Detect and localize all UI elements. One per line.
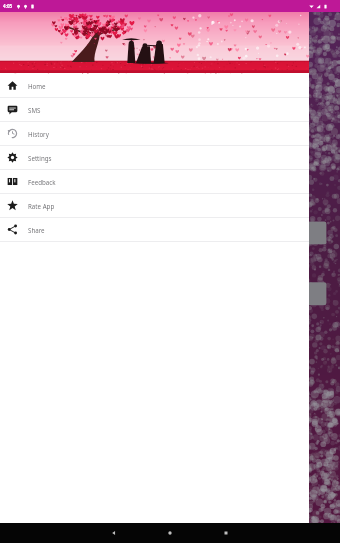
staticText: Settings (28, 154, 52, 162)
staticText: SMS (28, 106, 41, 114)
staticText: Rate App (28, 202, 55, 210)
staticText: 4:05 (3, 3, 13, 9)
button[interactable]: Rate App (0, 194, 309, 217)
staticText: Home (28, 82, 46, 90)
button[interactable]: Settings (0, 146, 309, 169)
button[interactable]: Feedback (0, 170, 309, 193)
button[interactable]: Recent apps (206, 523, 246, 543)
button[interactable]: Share (0, 218, 309, 241)
button[interactable]: Home (150, 523, 190, 543)
button[interactable]: SMS (0, 98, 309, 121)
staticText: Share (28, 226, 45, 234)
button[interactable]: Home (0, 74, 309, 97)
staticText: History (28, 130, 49, 138)
staticText: Feedback (28, 178, 56, 186)
button[interactable]: Back (94, 523, 134, 543)
button[interactable]: History (0, 122, 309, 145)
